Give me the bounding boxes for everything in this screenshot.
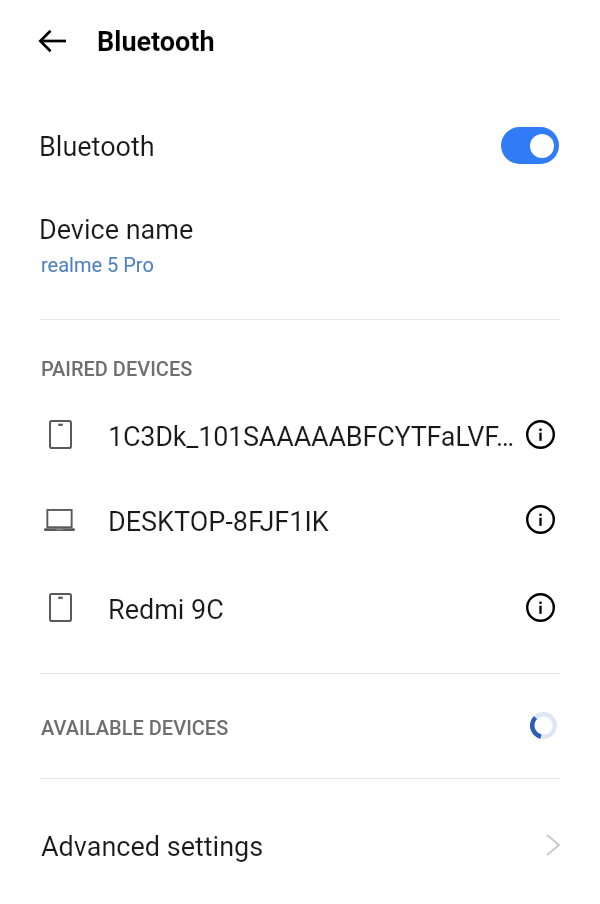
staticText: Redmi 9C	[108, 594, 224, 626]
button[interactable]: 1C3Dk_101SAAAAABFCYTFaLVF…	[0, 395, 600, 479]
button[interactable]: Advanced settings	[0, 800, 600, 888]
staticText: 1C3Dk_101SAAAAABFCYTFaLVF…	[108, 421, 514, 453]
button[interactable]: Device name	[0, 194, 600, 298]
button[interactable]: Turn Bluetooth off	[501, 127, 559, 164]
button[interactable]: About Redmi 9C	[520, 587, 561, 628]
staticText: Bluetooth	[39, 131, 155, 163]
staticText: Bluetooth	[97, 26, 215, 58]
button[interactable]: Navigate up	[29, 17, 76, 64]
staticText: PAIRED DEVICES	[41, 357, 193, 380]
staticText: DESKTOP-8FJF1IK	[108, 506, 329, 538]
button[interactable]: About 1C3Dk_101SAAAAABFCYTFaLVF…	[520, 414, 561, 455]
button[interactable]: DESKTOP-8FJF1IK	[0, 480, 600, 564]
staticText: AVAILABLE DEVICES	[41, 716, 229, 739]
button[interactable]: Bluetooth	[0, 104, 600, 186]
button[interactable]: Redmi 9C	[0, 568, 600, 652]
button[interactable]: About DESKTOP-8FJF1IK	[520, 499, 561, 540]
staticText: Device name	[39, 214, 194, 246]
staticText: realme 5 Pro	[41, 253, 154, 276]
staticText: Advanced settings	[41, 831, 264, 863]
